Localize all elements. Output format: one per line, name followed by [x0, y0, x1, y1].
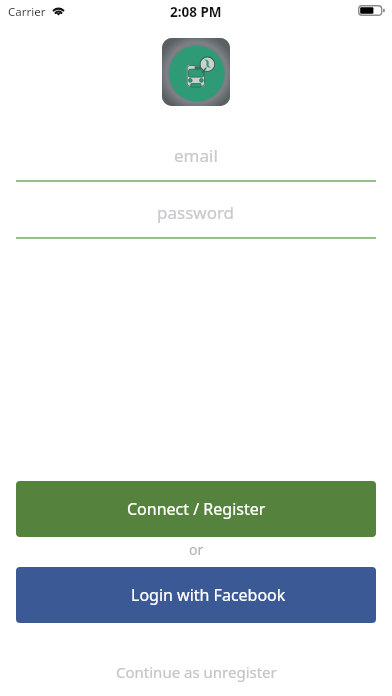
other: Battery — [358, 5, 385, 16]
button[interactable]: password — [16, 196, 376, 239]
other: Wi-Fi signal — [52, 5, 65, 15]
staticText: Login with Facebook — [131, 584, 286, 606]
staticText: or — [189, 540, 204, 559]
staticText: password — [157, 201, 235, 224]
button[interactable]: Connect / Register — [16, 481, 376, 537]
button[interactable]: email — [16, 139, 376, 182]
staticText: Carrier — [8, 4, 46, 20]
staticText: email — [174, 144, 218, 167]
button[interactable]: Login with Facebook — [16, 567, 376, 623]
other: App logo — [162, 38, 230, 106]
staticText: Continue as unregister — [116, 662, 277, 682]
staticText: Connect / Register — [127, 498, 266, 520]
staticText: 2:08 PM — [170, 3, 222, 21]
button[interactable]: Continue as unregister — [0, 649, 392, 695]
